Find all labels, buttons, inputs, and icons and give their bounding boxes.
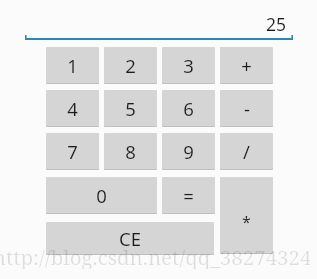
- button[interactable]: Digit 0: [46, 177, 157, 213]
- staticText: 6: [183, 96, 194, 121]
- staticText: 3: [183, 53, 194, 78]
- button[interactable]: Digit 8: [104, 133, 157, 169]
- button[interactable]: Digit 3: [162, 47, 215, 83]
- staticText: 0: [96, 183, 107, 208]
- button[interactable]: Digit 4: [46, 90, 99, 126]
- button[interactable]: Clear entry: [46, 222, 214, 254]
- button[interactable]: Multiply: [220, 177, 273, 253]
- button[interactable]: Digit 7: [46, 133, 99, 169]
- staticText: +: [241, 53, 252, 78]
- staticText: 7: [67, 139, 78, 164]
- button[interactable]: Result field: [25, 12, 287, 34]
- staticText: /: [243, 139, 250, 164]
- staticText: 25: [266, 12, 287, 34]
- staticText: CE: [119, 226, 141, 251]
- button[interactable]: Divide: [220, 133, 273, 169]
- button[interactable]: Digit 1: [46, 47, 99, 83]
- button[interactable]: Digit 9: [162, 133, 215, 169]
- button[interactable]: Digit 6: [162, 90, 215, 126]
- button[interactable]: Minus: [220, 90, 273, 126]
- staticText: 2: [125, 53, 136, 78]
- staticText: http://blog.csdn.net/qq_38274324: [0, 243, 310, 269]
- staticText: 5: [125, 96, 136, 121]
- button[interactable]: Digit 5: [104, 90, 157, 126]
- button[interactable]: Digit 2: [104, 47, 157, 83]
- staticText: =: [183, 183, 194, 208]
- button[interactable]: Plus: [220, 47, 273, 83]
- staticText: 1: [67, 53, 78, 78]
- button[interactable]: Equals: [162, 177, 215, 213]
- staticText: 9: [183, 139, 194, 164]
- staticText: 8: [125, 139, 136, 164]
- staticText: -: [244, 96, 250, 121]
- staticText: 4: [67, 96, 78, 121]
- staticText: *: [242, 211, 251, 233]
